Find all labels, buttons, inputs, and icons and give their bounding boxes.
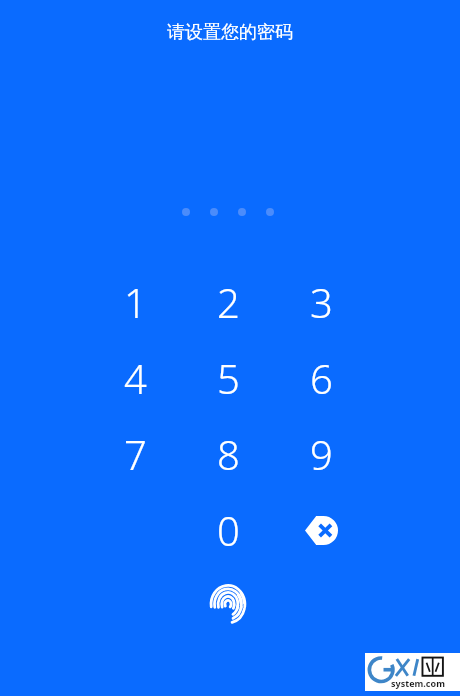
staticText: 1 — [124, 275, 147, 329]
button[interactable]: 3 — [283, 264, 359, 340]
staticText: 7 — [124, 427, 147, 481]
staticText: 4 — [124, 351, 147, 405]
staticText: 5 — [217, 351, 240, 405]
staticText: 6 — [310, 351, 333, 405]
staticText: 8 — [217, 427, 240, 481]
staticText: 0 — [217, 503, 240, 557]
staticText: 9 — [310, 427, 333, 481]
button[interactable]: 2 — [190, 264, 266, 340]
staticText: 请设置您的密码 — [167, 21, 293, 44]
button[interactable]: 5 — [190, 340, 266, 416]
button[interactable]: 6 — [283, 340, 359, 416]
button[interactable]: 9 — [283, 416, 359, 492]
staticText: 3 — [310, 275, 333, 329]
button[interactable]: 1 — [97, 264, 173, 340]
button[interactable]: 8 — [190, 416, 266, 492]
button[interactable]: 7 — [97, 416, 173, 492]
button[interactable]: Backspace — [283, 492, 359, 568]
staticText: 2 — [217, 275, 240, 329]
button[interactable]: 0 — [190, 492, 266, 568]
button[interactable]: 4 — [97, 340, 173, 416]
button[interactable]: Fingerprint unlock — [198, 572, 258, 632]
staticText: system.com — [391, 677, 445, 689]
